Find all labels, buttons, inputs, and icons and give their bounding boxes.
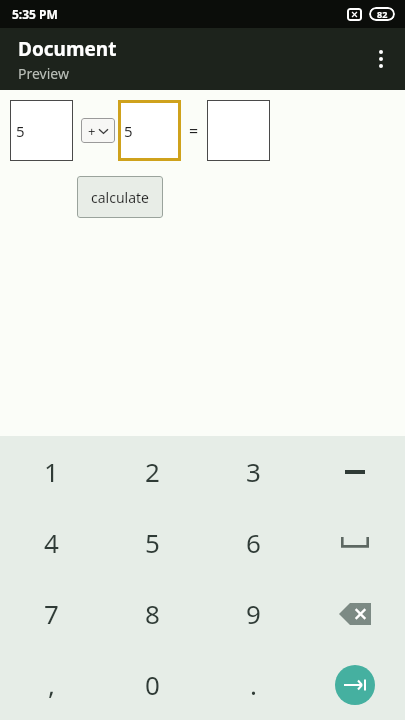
button[interactable]: 6 bbox=[203, 507, 304, 578]
button[interactable]: 9 bbox=[203, 578, 304, 649]
staticText: 0 bbox=[145, 667, 160, 702]
staticText: Preview bbox=[18, 64, 69, 83]
staticText: . bbox=[250, 667, 257, 702]
staticText: + bbox=[88, 122, 96, 140]
staticText: 1 bbox=[44, 454, 59, 489]
staticText: = bbox=[189, 120, 199, 142]
button[interactable]: 8 bbox=[102, 578, 203, 649]
staticText: 5 bbox=[145, 525, 160, 560]
staticText: 5 bbox=[124, 121, 133, 141]
button[interactable]: 4 bbox=[0, 507, 102, 578]
button[interactable]: 1 bbox=[0, 436, 102, 507]
staticText: 3 bbox=[246, 454, 261, 489]
button[interactable]: Enter bbox=[335, 665, 375, 705]
button[interactable]: 7 bbox=[0, 578, 102, 649]
staticText: 5:35 PM bbox=[12, 6, 58, 22]
staticText: 8 bbox=[145, 596, 160, 631]
button[interactable]: More options bbox=[357, 35, 405, 83]
button[interactable] bbox=[207, 100, 270, 161]
button[interactable]: 2 bbox=[102, 436, 203, 507]
button[interactable]: 5 bbox=[118, 100, 181, 161]
staticText: calculate bbox=[91, 188, 149, 207]
staticText: 4 bbox=[44, 525, 59, 560]
staticText: 5 bbox=[16, 121, 25, 141]
staticText: , bbox=[48, 667, 55, 702]
button[interactable]: Backspace bbox=[304, 578, 405, 649]
button[interactable]: , bbox=[0, 649, 102, 720]
button[interactable]: . bbox=[203, 649, 304, 720]
staticText: 82 bbox=[377, 8, 388, 20]
button[interactable]: 5 bbox=[102, 507, 203, 578]
button[interactable]: 5 bbox=[10, 100, 73, 161]
button[interactable]: Minus bbox=[304, 436, 405, 507]
button[interactable]: + bbox=[81, 118, 115, 143]
staticText: 9 bbox=[246, 596, 261, 631]
staticText: 7 bbox=[44, 596, 59, 631]
button[interactable]: Space bbox=[304, 507, 405, 578]
staticText: Document bbox=[18, 36, 117, 62]
button[interactable]: calculate bbox=[77, 176, 163, 218]
staticText: 6 bbox=[246, 525, 261, 560]
button[interactable]: 3 bbox=[203, 436, 304, 507]
button[interactable]: 0 bbox=[102, 649, 203, 720]
staticText: 2 bbox=[145, 454, 160, 489]
